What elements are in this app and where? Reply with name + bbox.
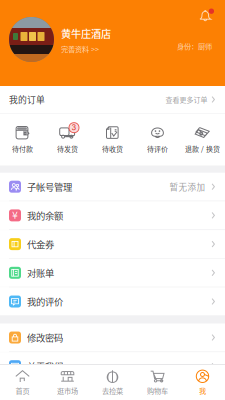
staticText: 我的余额 bbox=[27, 209, 63, 222]
button[interactable]: 代金券 bbox=[0, 230, 225, 258]
button[interactable]: 意见反馈 bbox=[0, 381, 225, 400]
staticText: 逛市场 bbox=[57, 385, 78, 396]
staticText: 待评价 bbox=[147, 144, 168, 154]
staticText: 我的评价 bbox=[27, 295, 63, 308]
staticText: 去捡菜 bbox=[102, 385, 123, 396]
staticText: 身份：厨师 bbox=[177, 41, 212, 51]
staticText: 退款 / 换货 bbox=[185, 144, 220, 154]
button[interactable]: 我的订单 bbox=[0, 86, 225, 113]
staticText: 我的订单 bbox=[9, 93, 45, 106]
button[interactable]: 待收货 bbox=[90, 114, 135, 166]
staticText: 待付款 bbox=[12, 144, 33, 154]
button[interactable]: 待评价 bbox=[135, 114, 180, 166]
button[interactable]: 待付款 bbox=[0, 114, 45, 166]
staticText: 3 bbox=[71, 123, 76, 132]
button[interactable]: 首页 bbox=[0, 365, 45, 400]
button[interactable]: 我 bbox=[180, 365, 225, 400]
staticText: 黄牛庄酒店 bbox=[61, 26, 111, 41]
staticText: 待发货 bbox=[57, 144, 78, 154]
button[interactable]: ¥ bbox=[0, 201, 225, 229]
button[interactable]: 黄牛庄酒店 bbox=[61, 26, 111, 54]
staticText: 子帐号管理 bbox=[27, 180, 72, 193]
button[interactable]: 逛市场 bbox=[45, 365, 90, 400]
staticText: 查看更多订单 bbox=[165, 94, 207, 104]
button[interactable]: 我的评价 bbox=[0, 287, 225, 315]
staticText: 对账单 bbox=[27, 266, 54, 279]
button[interactable]: 3 bbox=[45, 114, 90, 166]
staticText: 首页 bbox=[15, 385, 29, 396]
staticText: ¥ bbox=[12, 210, 18, 221]
staticText: 关于我们 bbox=[27, 359, 63, 373]
staticText: 暂无添加 bbox=[169, 180, 205, 193]
staticText: 修改密码 bbox=[27, 331, 63, 344]
button[interactable]: 关于我们 bbox=[0, 352, 225, 380]
button[interactable]: 去捡菜 bbox=[90, 365, 135, 400]
button[interactable]: 对账单 bbox=[0, 259, 225, 287]
button[interactable]: 子帐号管理 bbox=[0, 173, 225, 201]
staticText: 代金券 bbox=[27, 237, 54, 251]
staticText: 完善资料 >> bbox=[61, 44, 99, 54]
button[interactable]: 头像 bbox=[9, 17, 54, 62]
staticText: 意见反馈 bbox=[27, 388, 63, 400]
button[interactable]: 修改密码 bbox=[0, 323, 225, 351]
button[interactable]: 通知 bbox=[197, 7, 215, 25]
button[interactable]: 购物车 bbox=[135, 365, 180, 400]
staticText: 我 bbox=[199, 385, 206, 396]
staticText: 待收货 bbox=[102, 144, 123, 154]
button[interactable]: 退款 / 换货 bbox=[180, 114, 225, 166]
staticText: 购物车 bbox=[147, 385, 168, 396]
